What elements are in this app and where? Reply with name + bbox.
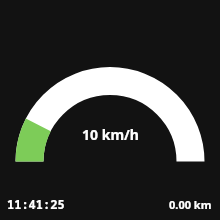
button[interactable]: 0.00 km: [169, 197, 220, 220]
staticText: 11:41:25: [7, 196, 65, 212]
button[interactable]: Speed gauge, 10 kilometers per hour: [0, 0, 220, 220]
staticText: 10 km/h: [82, 125, 139, 144]
staticText: 0.00 km: [169, 197, 212, 212]
button[interactable]: 11:41:25: [0, 196, 65, 220]
